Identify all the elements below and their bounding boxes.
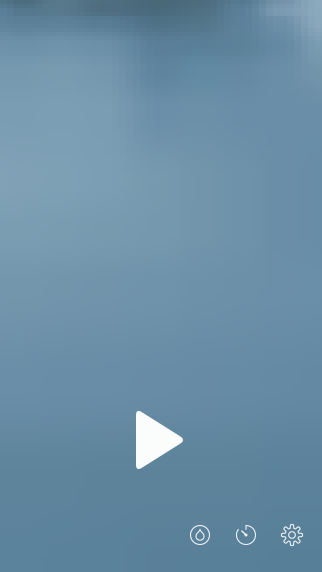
button[interactable]: Settings	[269, 512, 315, 558]
button[interactable]: Sounds	[177, 512, 223, 558]
button[interactable]: Timer	[223, 512, 269, 558]
button[interactable]: Play	[113, 392, 209, 488]
